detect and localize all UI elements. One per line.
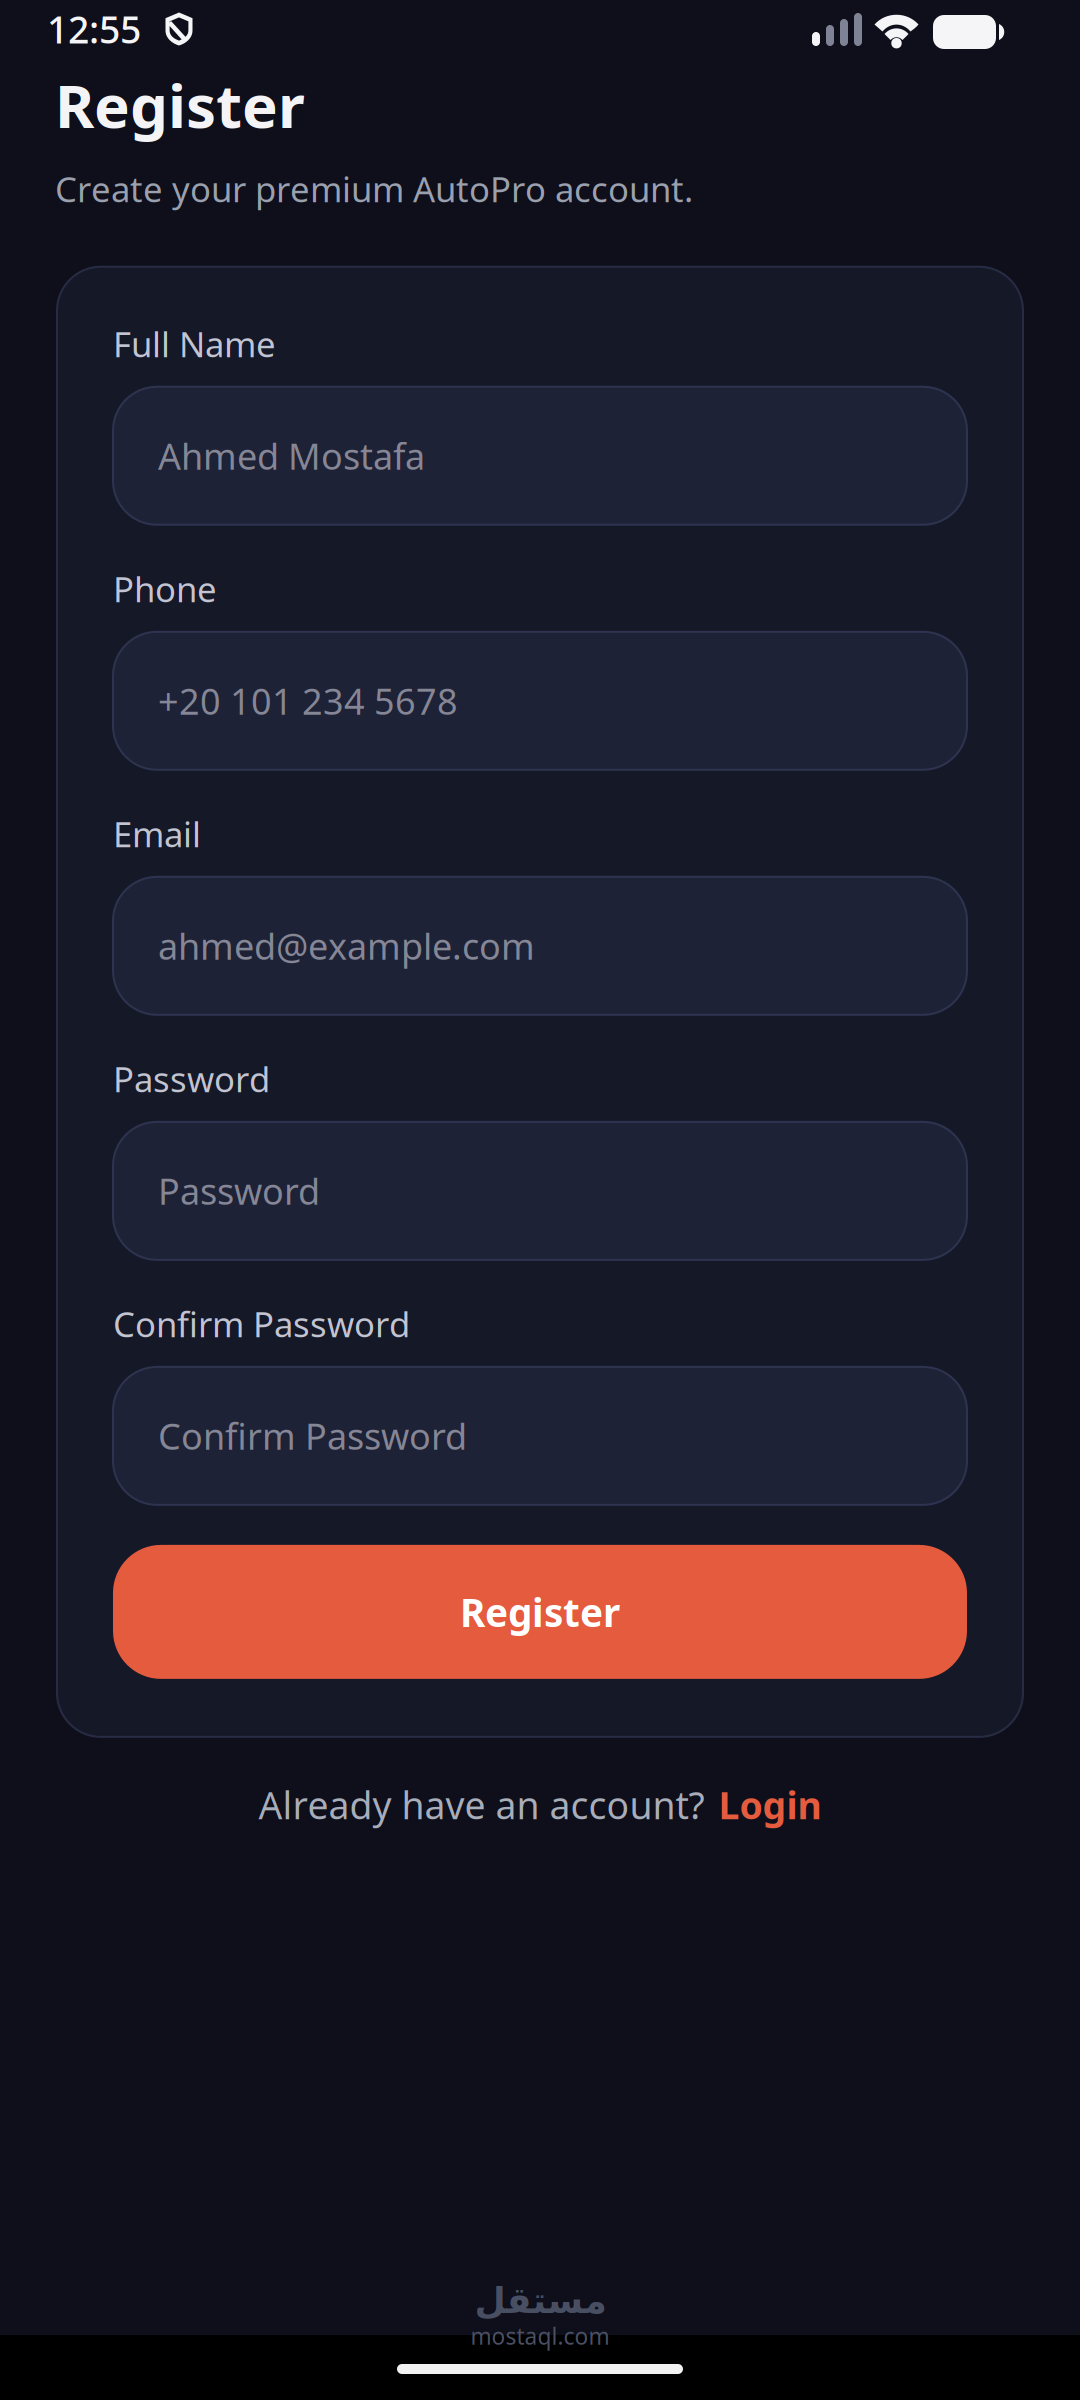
staticText: Already have an account? [258,1780,704,1829]
button[interactable]: Register [113,1545,967,1679]
staticText: Phone [113,566,217,612]
button[interactable]: +20 101 234 5678 [113,632,967,770]
staticText: +20 101 234 5678 [158,677,458,725]
staticText: ahmed@example.com [158,922,535,970]
button[interactable]: Already have an account? [258,1780,821,1829]
button[interactable]: Password [113,1122,967,1260]
staticText: Password [158,1167,320,1215]
staticText: 12:55 [47,4,141,54]
staticText: Email [113,811,201,857]
staticText: Full Name [113,321,276,367]
staticText: Ahmed Mostafa [158,432,425,480]
staticText: Confirm Password [158,1412,467,1460]
button[interactable]: Confirm Password [113,1367,967,1505]
button[interactable]: Ahmed Mostafa [113,387,967,525]
staticText: مستقل [474,2280,606,2321]
staticText: mostaql.com [470,2321,609,2351]
staticText: Password [113,1056,270,1102]
staticText: Confirm Password [113,1301,410,1347]
staticText: Create your premium AutoPro account. [55,166,693,212]
staticText: Register [460,1586,620,1637]
staticText: Register [55,65,305,145]
button[interactable]: ahmed@example.com [113,877,967,1015]
staticText: Login [718,1780,821,1829]
